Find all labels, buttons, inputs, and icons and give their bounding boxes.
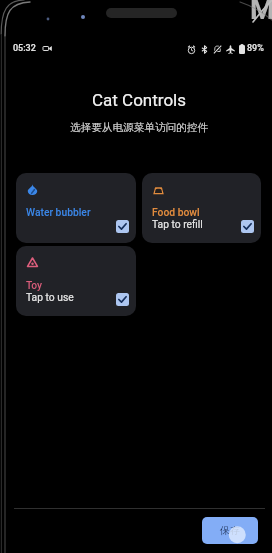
button[interactable]: Toy xyxy=(16,246,136,316)
button[interactable]: Food bowl xyxy=(142,173,261,243)
button[interactable]: 保存 xyxy=(202,517,258,544)
staticText: 05:32 xyxy=(13,43,36,54)
staticText: Tap to use xyxy=(26,291,74,303)
staticText: 选择要从电源菜单访问的控件 xyxy=(3,121,272,134)
button[interactable]: Toggle control xyxy=(116,220,129,233)
staticText: Cat Controls xyxy=(3,90,272,110)
staticText: M xyxy=(250,0,272,26)
button[interactable]: Toggle control xyxy=(241,220,254,233)
staticText: 保存 xyxy=(220,524,240,537)
staticText: Toy xyxy=(26,279,43,291)
staticText: Water bubbler xyxy=(26,206,91,218)
button[interactable]: Toggle control xyxy=(116,293,129,306)
staticText: Tap to refill xyxy=(152,218,203,230)
staticText: 89% xyxy=(247,43,264,54)
button[interactable]: Water bubbler xyxy=(16,173,136,243)
staticText: Food bowl xyxy=(152,206,200,218)
